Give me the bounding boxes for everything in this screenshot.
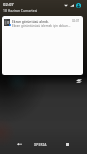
button[interactable]: Profile [76, 3, 81, 8]
button[interactable]: Back [12, 137, 26, 151]
staticText: 02:07 [3, 2, 14, 8]
staticText: Ekran görüntünüzü izlemek için dokunun. [12, 24, 71, 28]
staticText: Ekran görüntüsü alındı. [12, 19, 49, 23]
staticText: XPERIA [34, 143, 47, 147]
staticText: 02:07 [72, 19, 80, 23]
button[interactable]: Home [31, 137, 50, 153]
button[interactable]: Recent apps [60, 137, 74, 151]
staticText: 18 Haziran Cumartesi [3, 8, 38, 13]
button[interactable]: Ekran görüntüsü alındı. [2, 16, 83, 28]
